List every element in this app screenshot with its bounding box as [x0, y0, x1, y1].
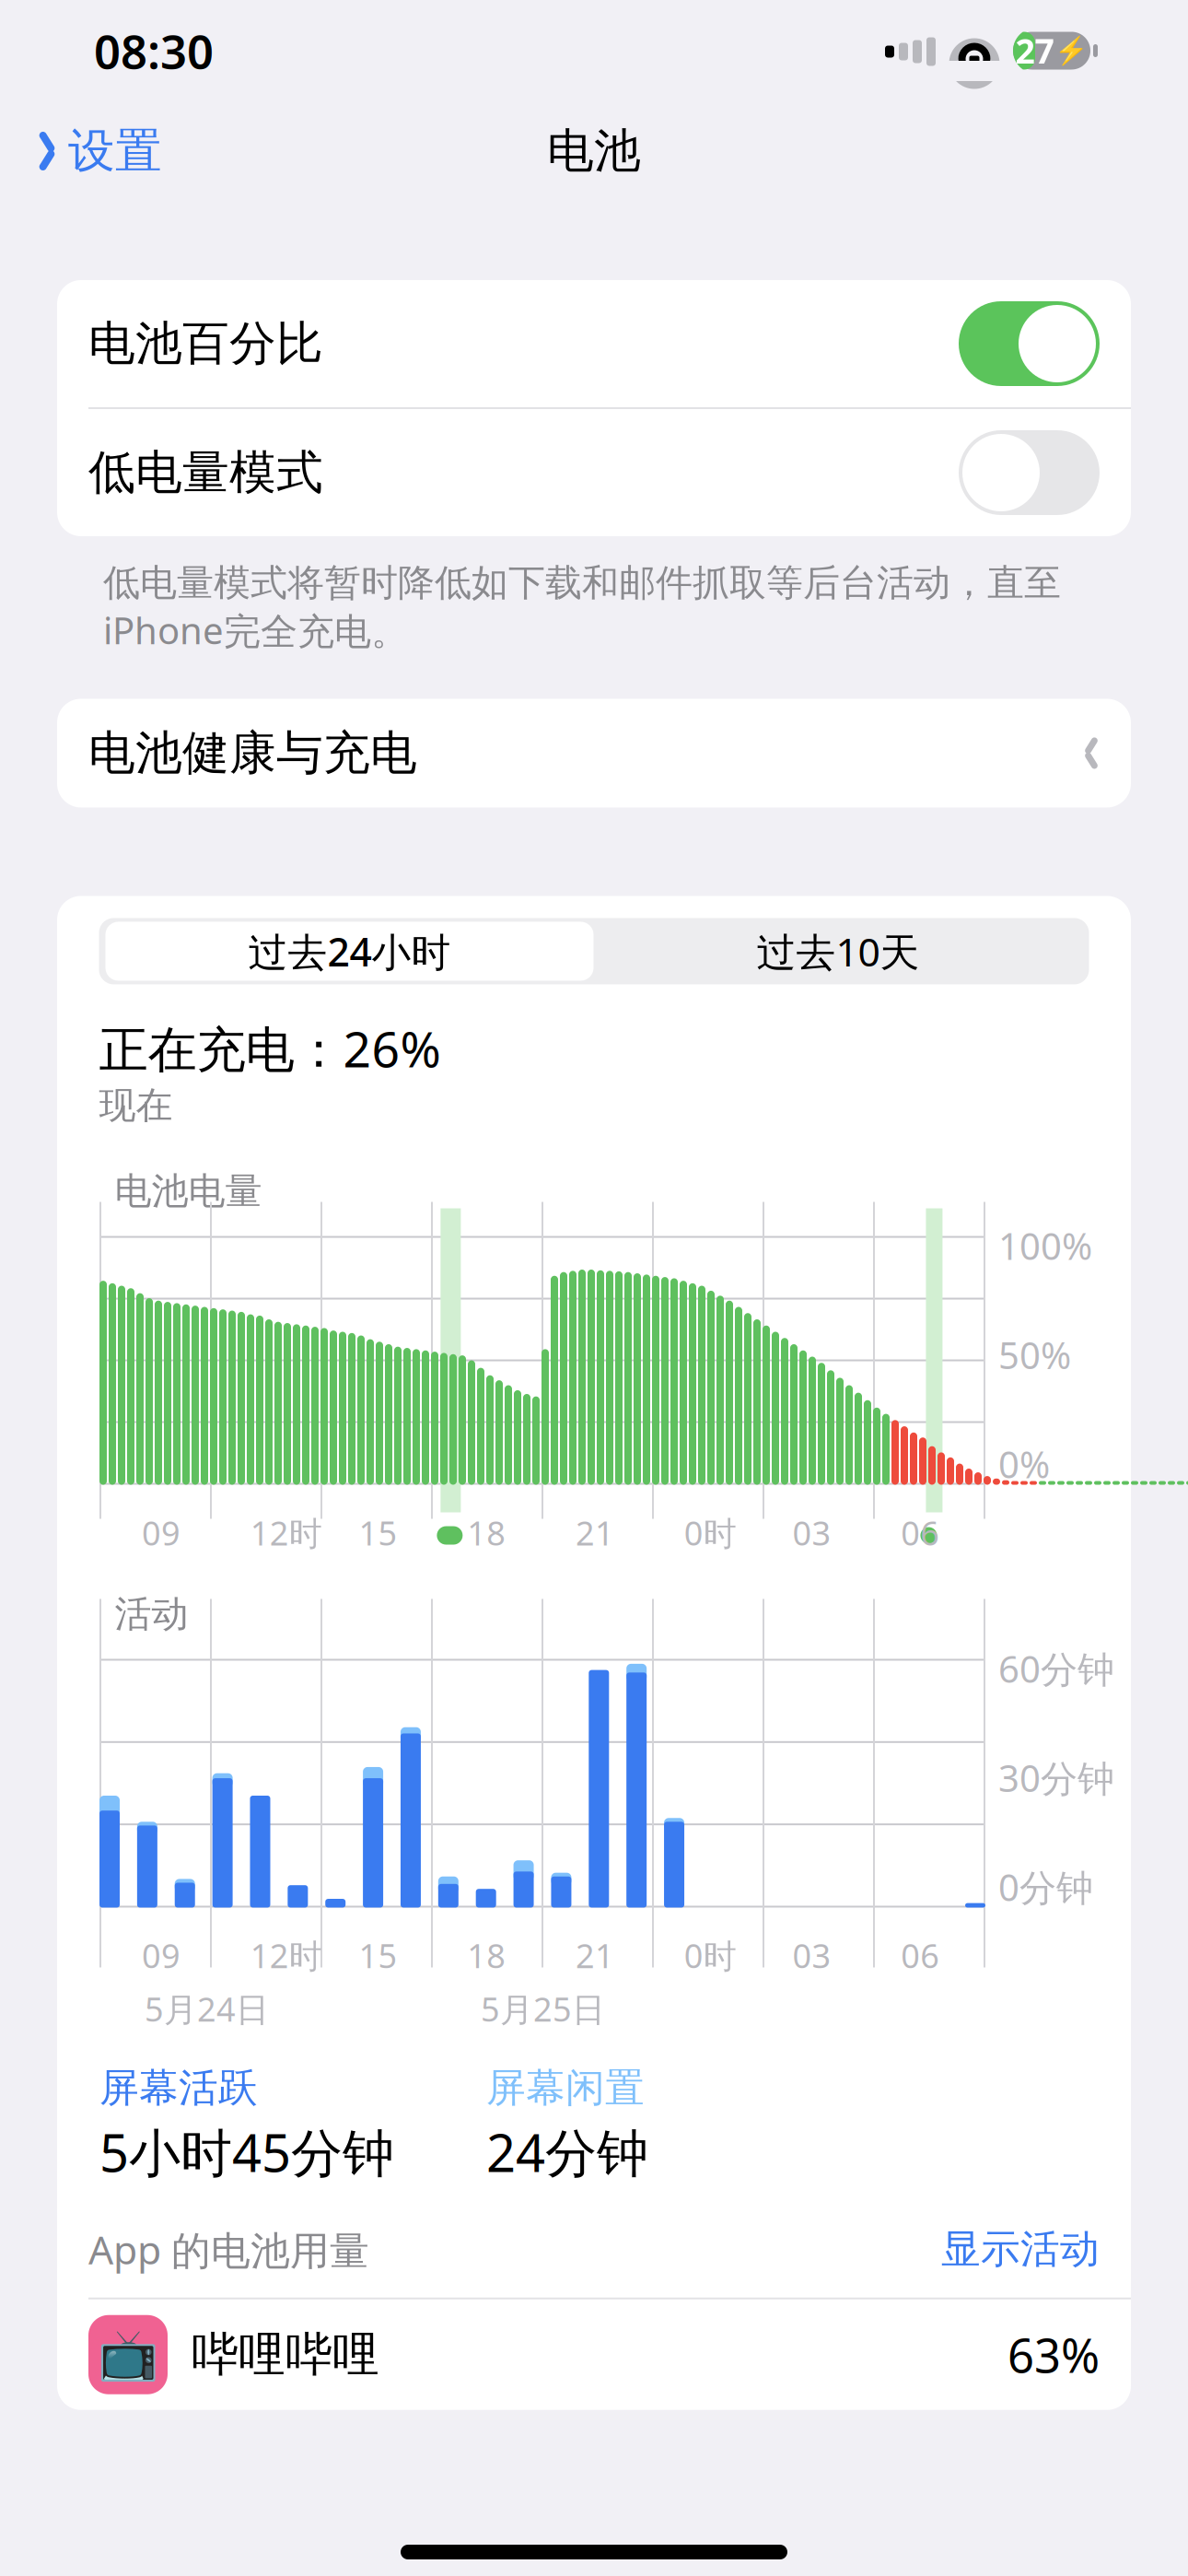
staticText: 06	[901, 1933, 940, 1977]
staticText: 现在	[99, 1083, 173, 1128]
button[interactable]: 显示活动	[941, 2225, 1100, 2273]
staticText: 03	[792, 1510, 831, 1555]
staticText: 09	[142, 1510, 181, 1555]
staticText: 50%	[998, 1330, 1071, 1379]
staticText: 09	[142, 1933, 181, 1977]
staticText: 5月24日	[145, 1987, 269, 2031]
staticText: 12时	[250, 1933, 322, 1977]
staticText: 过去24小时	[248, 925, 451, 977]
staticText: 电池	[547, 122, 641, 180]
staticText: 03	[792, 1933, 831, 1977]
button[interactable]: 低电量模式	[57, 409, 1131, 536]
staticText: 27	[1015, 28, 1054, 74]
staticText: 显示活动	[941, 2225, 1100, 2273]
staticText: 63%	[1007, 2324, 1100, 2386]
staticText: 18	[467, 1510, 506, 1555]
staticText: 15	[359, 1933, 397, 1977]
staticText: 设置	[68, 122, 162, 180]
staticText: 0%	[998, 1439, 1050, 1488]
staticText: 5月25日	[481, 1987, 605, 2031]
button[interactable]: 设置	[0, 111, 162, 191]
staticText: 哔哩哔哩	[192, 2326, 379, 2383]
staticText: 低电量模式将暂时降低如下载和邮件抓取等后台活动，直至 iPhone完全充电。	[103, 560, 1061, 655]
staticText: 屏幕活跃	[99, 2064, 258, 2112]
staticText: 活动	[115, 1591, 188, 1637]
staticText: 18	[467, 1933, 506, 1977]
staticText: 06	[901, 1510, 940, 1555]
button[interactable]: 📺	[57, 2299, 1131, 2410]
button[interactable]: 电池健康与充电	[57, 699, 1131, 808]
staticText: App 的电池用量	[88, 2223, 369, 2275]
staticText: 12时	[250, 1510, 322, 1555]
staticText: 低电量模式	[88, 444, 323, 501]
staticText: 屏幕闲置	[486, 2064, 645, 2112]
staticText: 21	[576, 1933, 614, 1977]
staticText: 电池健康与充电	[88, 724, 417, 782]
staticText: 电池电量	[115, 1169, 262, 1214]
staticText: 30分钟	[998, 1753, 1114, 1802]
staticText: 📺	[98, 2327, 158, 2383]
button[interactable]: 过去10天	[594, 922, 1083, 981]
staticText: 100%	[998, 1221, 1092, 1270]
staticText: 0分钟	[998, 1862, 1093, 1911]
staticText: 正在充电：26%	[99, 1016, 441, 1081]
staticText: 15	[359, 1510, 397, 1555]
staticText: ⚡	[1054, 35, 1088, 66]
staticText: 08:30	[94, 20, 214, 82]
staticText: 0时	[684, 1510, 737, 1555]
staticText: 21	[576, 1510, 614, 1555]
button[interactable]: 电池百分比	[57, 280, 1131, 407]
staticText: 60分钟	[998, 1644, 1114, 1693]
staticText: 过去10天	[757, 925, 920, 977]
staticText: 24分钟	[486, 2118, 648, 2186]
staticText: 0时	[684, 1933, 737, 1977]
button[interactable]: 过去24小时	[105, 922, 594, 981]
staticText: 5小时45分钟	[99, 2118, 394, 2186]
staticText: 电池百分比	[88, 315, 323, 372]
